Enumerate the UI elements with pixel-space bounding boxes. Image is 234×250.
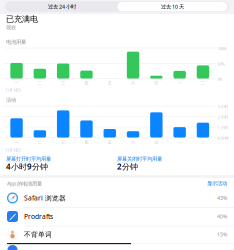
staticText: 四	[84, 140, 88, 145]
staticText: 五	[108, 80, 112, 85]
staticText: 一	[14, 140, 18, 145]
staticText: 二	[38, 80, 42, 85]
staticText: Prodrafts	[24, 212, 53, 221]
staticText: 二	[201, 140, 205, 145]
staticText: 日	[154, 140, 158, 145]
staticText: 活动	[6, 97, 16, 103]
button[interactable]: 过去 10 天	[117, 2, 227, 11]
staticText: 六	[131, 140, 135, 145]
staticText: 0%	[218, 76, 223, 82]
staticText: Safari 浏览器	[24, 194, 66, 202]
staticText: 三	[61, 80, 65, 85]
staticText: 11月14日	[5, 147, 21, 153]
button[interactable]: Safari 浏览器	[0, 189, 234, 206]
staticText: 电池用量	[6, 39, 26, 45]
staticText: 1 小时	[218, 125, 229, 130]
staticText: 一	[14, 80, 18, 85]
staticText: 显示活动	[207, 180, 227, 187]
button[interactable]: 不背单词	[0, 226, 234, 243]
staticText: 3 小时	[218, 104, 229, 109]
staticText: 四	[84, 80, 88, 85]
staticText: 现在	[6, 24, 16, 31]
staticText: 五	[108, 140, 112, 145]
staticText: 0 分钟	[218, 135, 229, 141]
staticText: 二	[38, 140, 42, 145]
staticText: 屏幕打开时平均用量	[6, 156, 51, 162]
button[interactable]: 过去 24 小时	[6, 1, 117, 12]
staticText: 40%	[217, 213, 227, 220]
staticText: 二	[201, 80, 205, 85]
staticText: App 的电池用量	[7, 180, 42, 187]
staticText: 4小时9分钟	[6, 161, 48, 172]
staticText: 50%	[218, 61, 225, 66]
staticText: 三	[61, 140, 65, 145]
staticText: 100%	[218, 46, 227, 51]
staticText: 六	[131, 80, 135, 85]
staticText: 2分钟	[117, 161, 138, 172]
staticText: 已充满电	[6, 14, 38, 24]
staticText: 一	[178, 140, 182, 145]
staticText: 15%	[217, 231, 227, 238]
staticText: 一	[178, 80, 182, 85]
staticText: 日	[154, 80, 158, 85]
staticText: 屏幕关闭时平均用量	[117, 156, 162, 162]
staticText: 过去 10 天	[161, 3, 184, 10]
staticText: 不背单词	[24, 230, 52, 239]
staticText: 43%	[217, 194, 227, 202]
staticText: 过去 24 小时	[48, 3, 76, 10]
button[interactable]: Prodrafts	[0, 208, 234, 225]
staticText: 2 小时	[218, 114, 229, 120]
button[interactable]: 显示活动	[181, 180, 227, 187]
staticText: 11月14日	[5, 87, 21, 93]
